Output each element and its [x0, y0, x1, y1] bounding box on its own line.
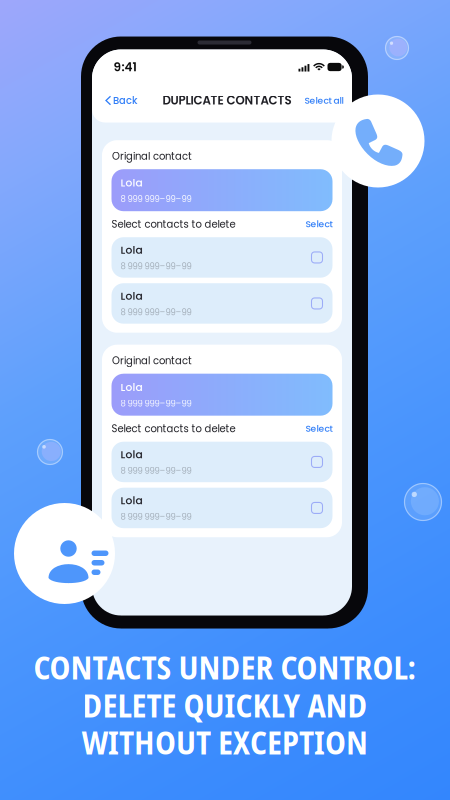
staticText: DELETE QUICKLY AND [82, 683, 367, 727]
staticText: Select all [304, 94, 343, 107]
staticText: Select [305, 422, 332, 435]
button[interactable]: Contacts [14, 503, 115, 604]
staticText: Select contacts to delete [111, 217, 235, 231]
staticText: 8 999 999–99–99 [120, 465, 191, 477]
button[interactable]: Lola [111, 442, 332, 482]
staticText: Lola [120, 380, 142, 395]
button[interactable]: Call [331, 94, 424, 187]
staticText: Lola [120, 289, 142, 303]
staticText: Back [113, 94, 137, 107]
staticText: 9:41 [113, 59, 136, 75]
staticText: 8 999 999–99–99 [120, 306, 191, 318]
staticText: DUPLICATE CONTACTS [162, 92, 291, 109]
staticText: Original contact [112, 354, 192, 368]
button[interactable]: Select all [303, 91, 345, 109]
button[interactable]: Select [305, 218, 332, 231]
staticText: Lola [120, 447, 142, 462]
staticText: Lola [120, 175, 142, 190]
staticText: Select contacts to delete [111, 422, 235, 436]
staticText: 8 999 999–99–99 [120, 260, 191, 272]
staticText: CONTACTS UNDER CONTROL: [33, 645, 416, 689]
staticText: Original contact [112, 149, 192, 163]
button[interactable]: Back [106, 91, 137, 109]
staticText: Lola [120, 243, 142, 257]
staticText: 8 999 999–99–99 [120, 193, 191, 205]
button[interactable]: Lola [111, 283, 332, 324]
button[interactable]: Select [305, 422, 332, 435]
staticText: 8 999 999–99–99 [120, 511, 191, 523]
staticText: Lola [120, 493, 142, 508]
button[interactable]: Lola [111, 237, 332, 278]
button[interactable]: Lola [111, 488, 332, 528]
staticText: WITHOUT EXCEPTION [82, 720, 368, 764]
staticText: Select [305, 218, 332, 231]
staticText: 8 999 999–99–99 [120, 398, 191, 410]
